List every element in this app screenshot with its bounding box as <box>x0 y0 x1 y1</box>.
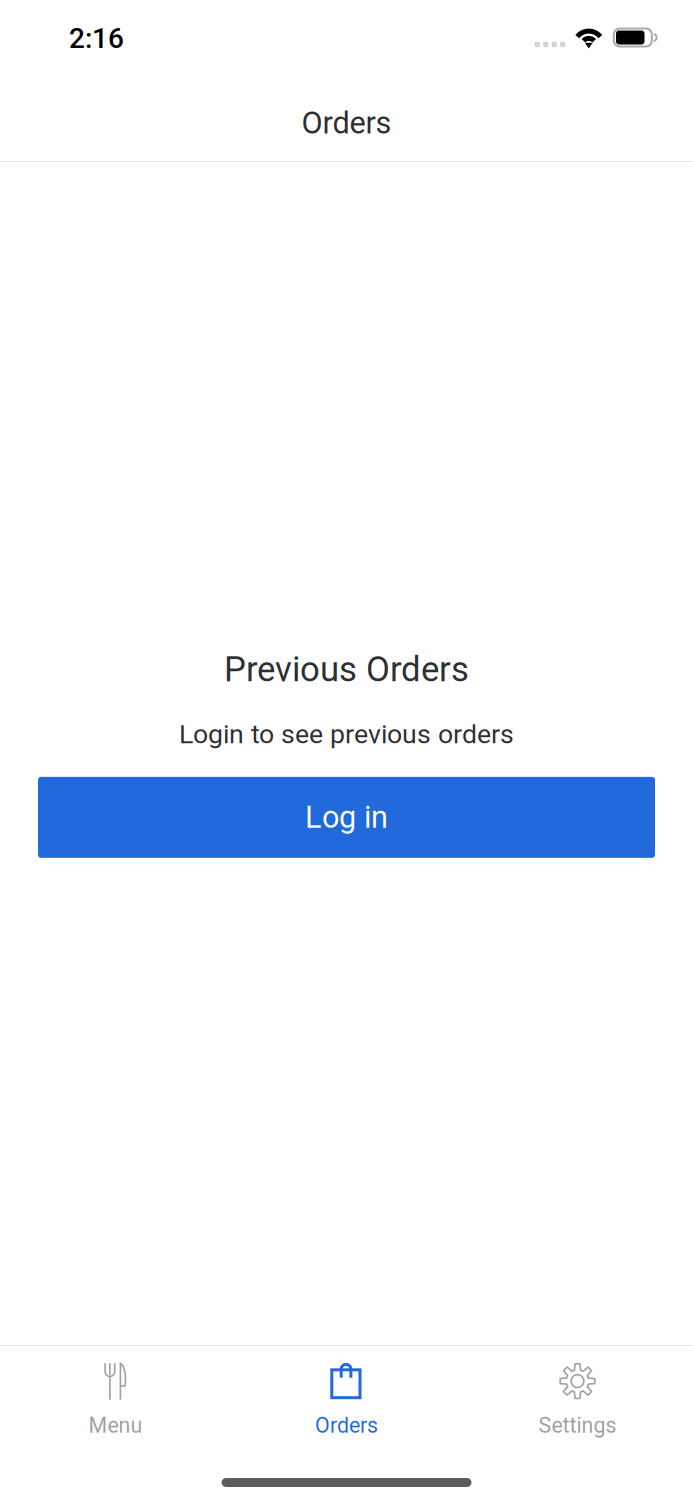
button[interactable]: Orders <box>231 1360 462 1460</box>
staticText: Menu <box>88 1413 142 1438</box>
staticText: Settings <box>538 1413 616 1438</box>
button[interactable]: Log in <box>38 777 655 858</box>
button[interactable]: Settings <box>462 1360 693 1460</box>
staticText: Previous Orders <box>224 649 469 690</box>
staticText: Log in <box>305 799 388 835</box>
staticText: Orders <box>301 105 391 141</box>
staticText: 2:16 <box>69 22 124 55</box>
button[interactable]: Menu <box>0 1360 231 1460</box>
staticText: Orders <box>315 1413 378 1438</box>
staticText: Login to see previous orders <box>179 719 514 750</box>
